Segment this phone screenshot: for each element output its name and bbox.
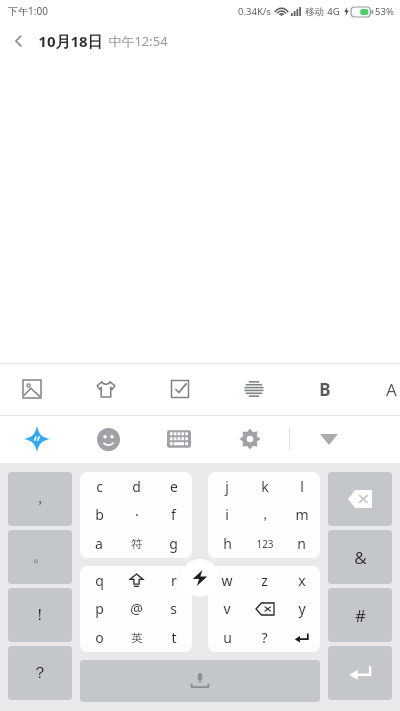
staticText: o [95,628,104,647]
staticText: ， [33,490,47,508]
button[interactable]: k [246,472,283,500]
button[interactable]: i [208,500,246,529]
staticText: ? [261,628,268,647]
button[interactable]: & [328,530,392,584]
staticText: 0.34K/s [238,5,271,18]
button[interactable]: Center key [181,559,219,597]
button[interactable]: Backspace [328,472,392,526]
button[interactable]: Align [240,375,268,403]
button[interactable]: B [312,376,338,402]
button[interactable]: r [155,566,192,594]
button[interactable]: Settings [233,422,267,456]
button[interactable]: s [155,594,192,623]
staticText: 10月18日 [38,31,103,51]
staticText: i [225,505,229,524]
button[interactable]: l [283,472,320,500]
button[interactable]: Checklist [166,375,194,403]
staticText: n [297,534,306,553]
button[interactable]: Keyboard [162,422,196,456]
staticText: 符 [131,537,143,551]
staticText: g [169,534,178,553]
button[interactable]: e [155,472,192,500]
staticText: p [95,599,104,618]
button[interactable]: 英 [118,623,155,652]
button[interactable]: w [208,566,246,594]
button[interactable]: u [208,623,246,652]
button[interactable]: · [118,500,155,529]
button[interactable]: o [80,623,118,652]
button[interactable]: Enter [328,646,392,700]
staticText: b [95,505,104,524]
button[interactable]: p [80,594,118,623]
button[interactable]: m [283,500,320,529]
staticText: q [95,571,104,590]
staticText: r [171,571,177,590]
button[interactable]: ？ [8,646,72,700]
button[interactable] [283,623,320,652]
staticText: · [135,505,139,524]
staticText: y [298,599,306,618]
button[interactable]: ， [8,472,72,526]
button[interactable]: j [208,472,246,500]
staticText: 英 [131,631,143,645]
staticText: 下午1:00 [8,4,48,18]
staticText: A [386,378,397,401]
staticText: d [132,477,141,496]
button[interactable]: 符 [118,529,155,558]
staticText: f [171,505,176,524]
staticText: c [96,477,103,496]
staticText: m [295,505,309,524]
staticText: x [298,571,306,590]
staticText: # [355,604,366,627]
button[interactable]: x [283,566,320,594]
button[interactable]: t [155,623,192,652]
button[interactable]: Back [0,22,38,60]
button[interactable] [246,594,283,623]
button[interactable]: @ [118,594,155,623]
button[interactable]: Style [92,375,120,403]
staticText: 中午12:54 [108,32,168,50]
button[interactable] [118,566,155,594]
staticText: B [319,378,331,401]
button[interactable]: Emoji [91,422,125,456]
button[interactable]: h [208,529,246,558]
staticText: ， [258,506,272,524]
staticText: w [221,571,233,590]
button[interactable]: Sogou [20,422,54,456]
button[interactable]: ！ [8,588,72,642]
button[interactable]: n [283,529,320,558]
button[interactable]: 123 [246,529,283,558]
button[interactable]: g [155,529,192,558]
staticText: 4G [327,5,340,18]
button[interactable]: Insert image [18,375,46,403]
staticText: v [223,599,231,618]
staticText: 53% [375,5,394,18]
button[interactable]: ， [246,500,283,529]
button[interactable]: v [208,594,246,623]
staticText: t [171,628,177,647]
staticText: @ [130,599,143,618]
button[interactable]: ? [246,623,283,652]
button[interactable]: # [328,588,392,642]
button[interactable]: Hide keyboard [312,422,346,456]
staticText: & [354,546,367,569]
staticText: 移动 [305,6,324,18]
staticText: j [225,477,229,496]
staticText: l [300,477,304,496]
button[interactable]: f [155,500,192,529]
button[interactable]: z [246,566,283,594]
button[interactable]: q [80,566,118,594]
button[interactable]: A [382,376,400,402]
button[interactable]: y [283,594,320,623]
button[interactable]: c [80,472,118,500]
button[interactable]: a [80,529,118,558]
staticText: 。 [33,548,47,566]
button[interactable]: 。 [8,530,72,584]
staticText: e [170,477,178,496]
button[interactable]: Space [80,660,320,702]
staticText: z [261,571,268,590]
staticText: k [261,477,269,496]
button[interactable]: b [80,500,118,529]
button[interactable]: d [118,472,155,500]
staticText: s [170,599,177,618]
